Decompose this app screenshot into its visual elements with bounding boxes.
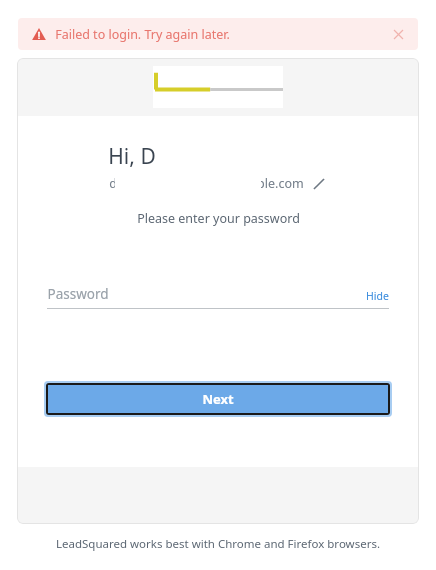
staticText: Hi, Dhananjay Kadam <box>108 142 321 171</box>
button[interactable]: Next <box>48 385 388 413</box>
staticText: Password <box>47 285 109 303</box>
button[interactable]: Dismiss <box>388 24 408 44</box>
staticText: Next <box>202 390 234 408</box>
button[interactable]: Hide <box>366 289 389 303</box>
staticText: LeadSquared works best with Chrome and F… <box>56 536 380 552</box>
button[interactable]: Password <box>47 285 389 303</box>
button[interactable]: Edit email <box>311 176 327 192</box>
staticText: dhananjay.kadam@example.com <box>109 175 304 192</box>
staticText: Failed to login. Try again later. <box>55 26 230 43</box>
staticText: Hide <box>366 289 389 303</box>
staticText: Please enter your password <box>137 210 300 227</box>
